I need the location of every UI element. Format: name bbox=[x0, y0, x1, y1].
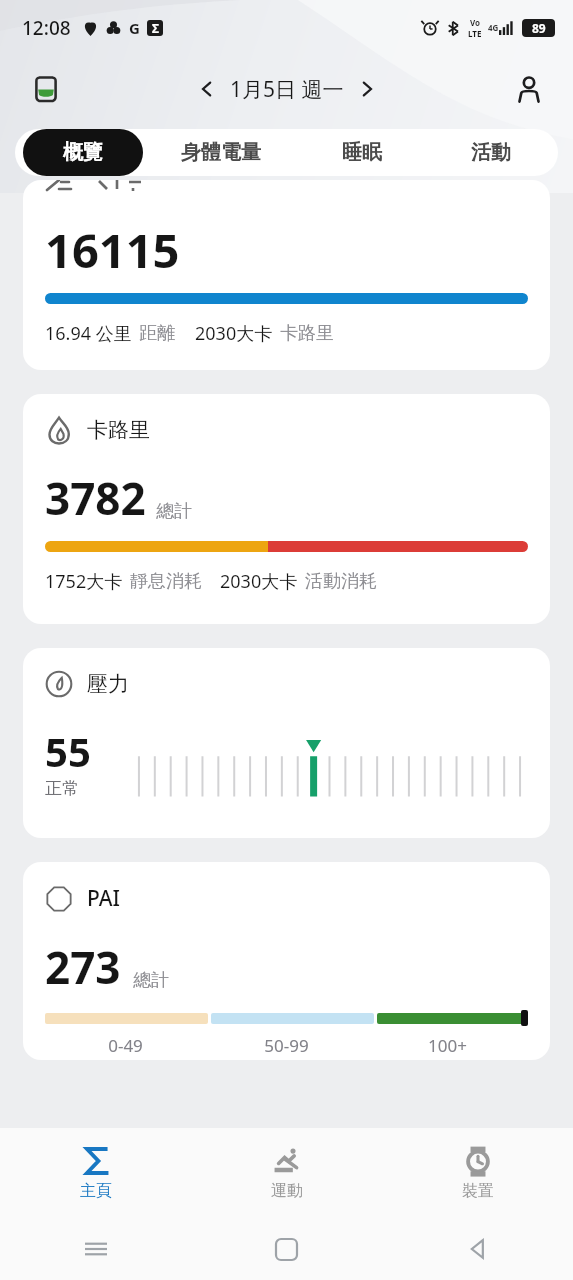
staticText: 12:08 bbox=[22, 15, 71, 41]
staticText: 89 bbox=[532, 20, 546, 36]
staticText: 3782 bbox=[45, 468, 146, 528]
staticText: LTE bbox=[468, 28, 482, 39]
staticText: 活動消耗 bbox=[305, 570, 377, 593]
button[interactable]: Previous day bbox=[186, 68, 228, 110]
staticText: 總計 bbox=[133, 969, 169, 992]
staticText: 16.94 公里 bbox=[45, 321, 132, 346]
staticText: Vo bbox=[470, 17, 481, 28]
button[interactable]: 裝置 bbox=[382, 1128, 573, 1218]
staticText: 壓力 bbox=[87, 671, 129, 697]
staticText: 靜息消耗 bbox=[130, 570, 202, 593]
button[interactable]: Profile bbox=[507, 67, 551, 111]
staticText: 睡眠 bbox=[342, 140, 382, 165]
button[interactable]: Back bbox=[382, 1218, 573, 1280]
staticText: 16115 bbox=[45, 218, 180, 282]
staticText: 運動 bbox=[271, 1181, 303, 1201]
button[interactable]: 壓力 bbox=[23, 648, 550, 838]
staticText: 2030大卡 bbox=[195, 321, 273, 346]
staticText: Σ bbox=[152, 20, 159, 36]
staticText: 273 bbox=[45, 937, 121, 997]
button[interactable]: Next day bbox=[346, 68, 388, 110]
staticText: 100+ bbox=[367, 1034, 528, 1057]
button[interactable]: 主頁 bbox=[0, 1128, 191, 1218]
staticText: 總計 bbox=[156, 500, 192, 523]
button[interactable]: 16115 bbox=[23, 180, 550, 370]
button[interactable]: 身體電量 bbox=[143, 129, 299, 176]
staticText: 卡路里 bbox=[87, 417, 150, 443]
staticText: 卡路里 bbox=[280, 322, 334, 345]
button[interactable]: PAI bbox=[23, 862, 550, 1060]
staticText: 距離 bbox=[139, 322, 175, 345]
staticText: 概覽 bbox=[63, 140, 103, 165]
staticText: 1月5日 週一 bbox=[230, 75, 344, 104]
button[interactable]: 活動 bbox=[424, 129, 558, 176]
staticText: 0-49 bbox=[45, 1034, 206, 1057]
button[interactable]: 概覽 bbox=[23, 129, 143, 176]
button[interactable]: Home bbox=[191, 1218, 382, 1280]
staticText: G bbox=[129, 18, 140, 38]
staticText: 身體電量 bbox=[181, 140, 261, 165]
button[interactable]: 運動 bbox=[191, 1128, 382, 1218]
staticText: 50-99 bbox=[206, 1034, 367, 1057]
staticText: 活動 bbox=[471, 140, 511, 165]
staticText: PAI bbox=[87, 884, 120, 913]
staticText: 55 bbox=[45, 724, 91, 778]
staticText: 1752大卡 bbox=[45, 569, 123, 594]
button[interactable]: 睡眠 bbox=[299, 129, 424, 176]
button[interactable]: 卡路里 bbox=[23, 394, 550, 624]
button[interactable]: Recent apps bbox=[0, 1218, 191, 1280]
staticText: 正常 bbox=[45, 778, 79, 799]
button[interactable]: Device battery bbox=[24, 67, 68, 111]
staticText: 主頁 bbox=[80, 1181, 112, 1201]
staticText: 裝置 bbox=[462, 1181, 494, 1201]
staticText: 4G bbox=[488, 22, 499, 33]
staticText: 2030大卡 bbox=[220, 569, 298, 594]
